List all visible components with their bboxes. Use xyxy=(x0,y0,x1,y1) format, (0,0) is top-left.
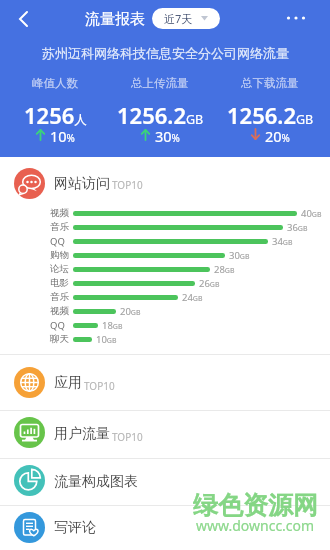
button[interactable] xyxy=(0,410,330,458)
staticText: 流量构成图表 xyxy=(54,473,138,491)
staticText: 应用 xyxy=(54,374,82,392)
staticText: 视频 xyxy=(50,207,69,219)
staticText: 34GB xyxy=(272,235,293,248)
staticText: 视频 xyxy=(50,305,69,317)
staticText: 18GB xyxy=(102,319,123,332)
button[interactable] xyxy=(0,158,330,206)
staticText: 26GB xyxy=(199,277,220,290)
staticText: 论坛 xyxy=(50,263,69,275)
button[interactable] xyxy=(278,6,314,30)
staticText: 20% xyxy=(265,126,290,143)
button[interactable] xyxy=(0,458,330,505)
staticText: 28GB xyxy=(214,263,235,276)
staticText: www.downcc.com xyxy=(196,516,315,534)
staticText: 总上传流量 xyxy=(131,76,189,90)
staticText: 购物 xyxy=(50,249,69,261)
staticText: 40GB xyxy=(301,207,322,220)
staticText: 电影 xyxy=(50,277,69,289)
button[interactable] xyxy=(10,4,36,34)
staticText: 绿色资源网 xyxy=(193,490,318,520)
staticText: TOP10 xyxy=(112,430,143,444)
button[interactable] xyxy=(0,505,330,550)
staticText: 1256.2GB xyxy=(117,100,204,126)
staticText: QQ xyxy=(50,319,65,332)
button[interactable]: 近7天 xyxy=(152,8,220,29)
staticText: 20GB xyxy=(120,305,141,318)
staticText: 音乐 xyxy=(50,291,69,303)
staticText: 用户流量 xyxy=(54,425,110,443)
staticText: 总下载流量 xyxy=(241,76,299,90)
staticText: TOP10 xyxy=(112,178,143,192)
staticText: 30% xyxy=(155,126,180,143)
staticText: 30GB xyxy=(229,249,250,262)
staticText: 1256人 xyxy=(24,100,87,126)
staticText: 10GB xyxy=(96,333,117,346)
staticText: 峰值人数 xyxy=(32,76,78,90)
staticText: 苏州迈科网络科技信息安全分公司网络流量 xyxy=(42,45,289,61)
staticText: 网站访问 xyxy=(54,175,110,193)
button[interactable] xyxy=(0,355,330,410)
staticText: 音乐 xyxy=(50,221,69,233)
staticText: 10% xyxy=(50,126,75,143)
staticText: 近7天 xyxy=(164,11,193,26)
staticText: TOP10 xyxy=(84,379,115,393)
staticText: 流量报表 xyxy=(85,10,145,29)
staticText: QQ xyxy=(50,235,65,248)
staticText: 1256.2GB xyxy=(227,100,314,126)
staticText: 写评论 xyxy=(54,519,96,537)
staticText: 24GB xyxy=(182,291,203,304)
staticText: 聊天 xyxy=(50,333,69,345)
staticText: 36GB xyxy=(287,221,308,234)
